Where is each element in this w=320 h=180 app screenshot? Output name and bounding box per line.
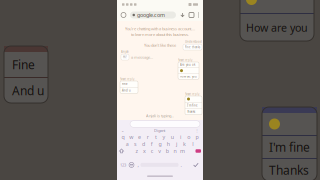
staticText: I'm fine [269,139,310,155]
staticText: g [158,140,161,148]
staticText: And u [122,89,131,92]
staticText: q [122,133,125,141]
staticText: Smart reply [178,58,192,62]
button[interactable]: I'm fine [262,107,317,180]
staticText: h [167,140,170,148]
staticText: Are you ok [180,63,195,66]
staticText: Thanks [269,162,309,178]
staticText: c [151,147,154,155]
staticText: Anjali [121,50,129,53]
staticText: ⋮ [195,128,199,133]
staticText: v [158,147,161,155]
staticText: You don't like these [144,43,176,48]
staticText: j [176,140,177,148]
staticText: f [151,140,153,148]
staticText: b [166,147,169,155]
staticText: Fine [122,82,128,86]
staticText: n [173,147,176,155]
button[interactable]: How are you [240,0,314,41]
staticText: y [163,133,166,141]
staticText: w [129,133,133,141]
staticText: m [180,147,185,155]
staticText: r [147,133,149,141]
staticText: You're chatting with a business account.… [125,26,195,31]
staticText: l [192,140,193,148]
staticText: o [187,133,190,141]
staticText: u [171,133,174,141]
staticText: t [155,133,157,141]
staticText: How are you [180,75,197,78]
staticText: k [183,140,186,148]
staticText: Smart reply [185,92,199,96]
staticText: Digant [154,128,165,133]
staticText: a [126,140,129,148]
staticText: p [195,133,198,141]
button[interactable]: Fine [4,46,48,103]
staticText: Hi! [123,55,127,59]
staticText: I'm fine [187,104,198,107]
staticText: d [142,140,145,148]
staticText: How are you [246,20,308,35]
staticText: 123 [120,162,126,167]
staticText: x [143,147,146,155]
staticText: Understood [185,40,202,43]
staticText: . [180,161,181,168]
staticText: Thanks [187,110,195,113]
staticText: Anjali is typing… [146,113,174,118]
staticText: to learn more about this business. [131,32,189,37]
staticText: ⌄ [121,128,124,133]
staticText: e [138,133,141,141]
staticText: a message… [131,54,153,60]
staticText: google.com [137,11,165,19]
staticText: Fine [12,56,35,72]
staticText: z [135,147,138,155]
staticText: Fine thanks [185,45,200,49]
staticText: i [180,133,181,141]
staticText: And u [12,82,44,98]
staticText: s [134,140,137,148]
staticText: Smart reply [120,77,134,81]
